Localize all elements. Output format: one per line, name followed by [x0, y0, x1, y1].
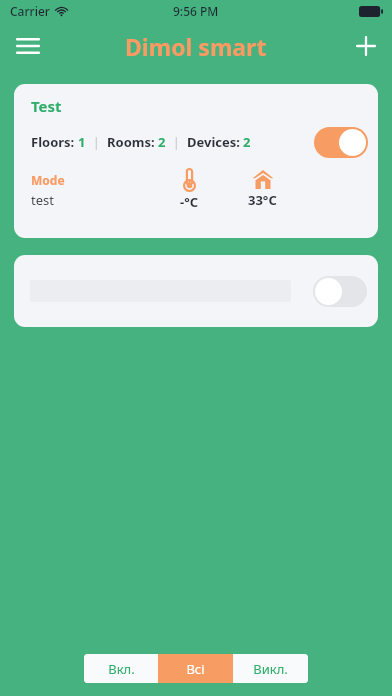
staticText: 9:56 PM: [173, 3, 219, 19]
staticText: Rooms:: [107, 133, 155, 151]
staticText: 2: [158, 133, 166, 151]
staticText: Всі: [186, 660, 205, 678]
button[interactable]: Power toggle off: [313, 276, 367, 307]
staticText: Floors:: [31, 133, 75, 151]
staticText: 1: [78, 133, 86, 151]
staticText: test: [31, 191, 54, 209]
staticText: -°C: [180, 193, 199, 211]
button[interactable]: Вкл.: [84, 654, 158, 683]
staticText: Dimol smart: [125, 31, 267, 62]
staticText: 2: [243, 133, 251, 151]
button[interactable]: Add: [344, 24, 388, 68]
staticText: 33°C: [248, 191, 277, 209]
button[interactable]: Menu: [6, 24, 50, 68]
button[interactable]: Всі: [158, 654, 233, 683]
button[interactable]: Test: [14, 84, 378, 238]
staticText: |: [166, 133, 187, 151]
button[interactable]: Power toggle off: [14, 255, 378, 327]
staticText: |: [86, 133, 107, 151]
staticText: Devices:: [187, 133, 240, 151]
staticText: Carrier: [10, 3, 50, 19]
button[interactable]: Power toggle on: [314, 127, 368, 158]
staticText: Mode: [31, 172, 65, 188]
button[interactable]: Викл.: [233, 654, 308, 683]
staticText: Test: [31, 96, 62, 116]
staticText: Вкл.: [108, 660, 135, 678]
staticText: Викл.: [253, 660, 288, 678]
